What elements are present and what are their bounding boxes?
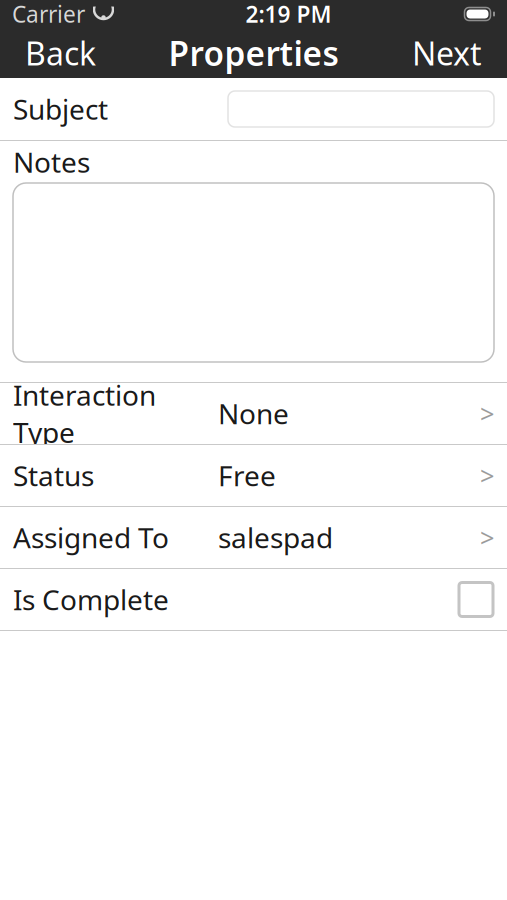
button[interactable]: Is Complete — [0, 569, 507, 630]
staticText: Interaction Type — [13, 376, 156, 451]
button[interactable]: Next — [398, 24, 496, 82]
staticText: Subject — [13, 90, 108, 128]
staticText: salespad — [218, 519, 333, 556]
button[interactable]: Interaction Type — [0, 383, 507, 444]
staticText: Properties — [168, 31, 338, 75]
staticText: Carrier — [12, 0, 85, 29]
staticText: None — [218, 395, 289, 432]
staticText: Free — [218, 457, 276, 494]
staticText: Is Complete — [13, 581, 169, 618]
staticText: > — [480, 397, 494, 430]
button[interactable]: Status — [0, 445, 507, 506]
staticText: Next — [412, 32, 482, 74]
staticText: Status — [13, 457, 94, 494]
button[interactable]: Assigned To — [0, 507, 507, 568]
staticText: 2:19 PM — [245, 0, 331, 29]
staticText: Notes — [13, 143, 90, 181]
staticText: Back — [25, 32, 96, 74]
button[interactable]: Back — [11, 24, 110, 82]
staticText: > — [480, 459, 494, 492]
staticText: Assigned To — [13, 519, 169, 556]
staticText: > — [480, 521, 494, 554]
